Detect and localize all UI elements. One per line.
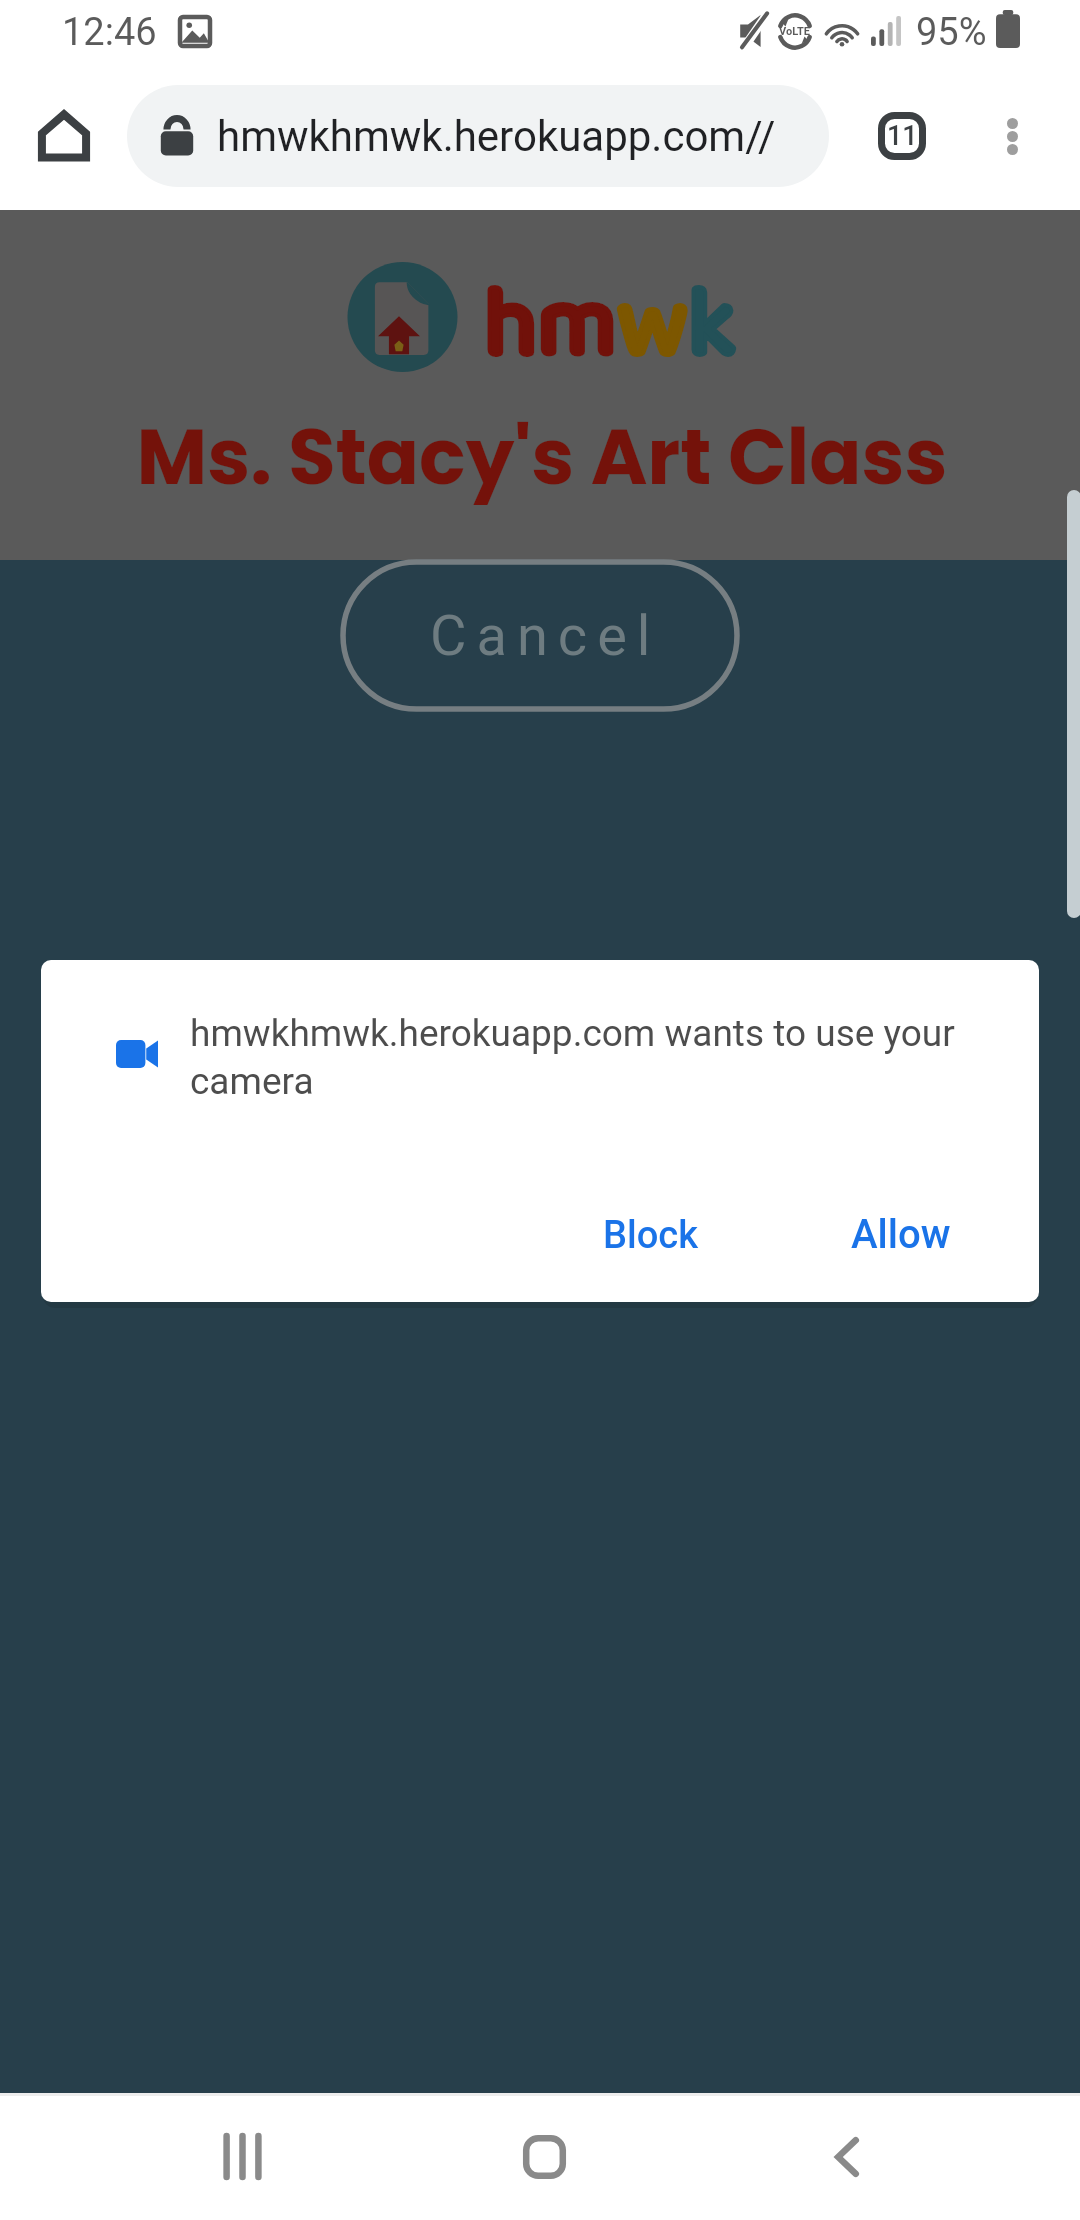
staticText: 95% — [916, 10, 987, 55]
staticText: w — [617, 247, 688, 402]
button[interactable]: Home — [8, 74, 120, 198]
staticText: w — [617, 247, 688, 402]
staticText: hmwkhmwk.herokuapp.com wants to use your… — [190, 1012, 980, 1103]
button[interactable]: Home — [484, 2113, 604, 2200]
staticText: Cancel — [430, 603, 661, 669]
staticText: Allow — [851, 1211, 951, 1258]
staticText: Ms. Stacy's Art Class — [2, 403, 1080, 511]
staticText: 12:46 — [62, 10, 157, 55]
button[interactable]: hmwkhmwk.herokuapp.com// — [127, 85, 829, 187]
staticText: hm — [484, 247, 617, 402]
staticText: Block — [603, 1213, 699, 1258]
button[interactable]: More options — [962, 74, 1062, 198]
staticText: 11 — [887, 120, 918, 152]
button[interactable]: Block — [588, 1198, 714, 1272]
staticText: VoLTE — [779, 25, 811, 38]
button[interactable]: Tabs — [842, 74, 962, 198]
staticText: hmwkhmwk.herokuapp.com// — [217, 112, 776, 161]
button[interactable]: Back — [787, 2113, 907, 2200]
button[interactable]: Allow — [836, 1197, 966, 1271]
button[interactable]: Cancel — [340, 559, 740, 712]
button[interactable]: Recent apps — [182, 2113, 302, 2200]
staticText: hm — [484, 247, 617, 402]
staticText: k — [688, 247, 736, 402]
staticText: k — [688, 247, 736, 402]
